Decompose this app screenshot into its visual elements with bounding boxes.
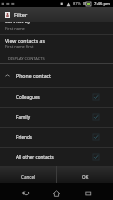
staticText: Phone contact	[16, 72, 51, 79]
button[interactable]: Friends	[0, 127, 113, 147]
staticText: Friends	[16, 134, 32, 140]
staticText: DISPLAY CONTACTS	[8, 56, 45, 61]
button[interactable]: Cancel	[0, 166, 56, 183]
staticText: Cancel	[21, 174, 36, 180]
button[interactable]: View contacts as	[0, 35, 113, 52]
staticText: 87%	[73, 1, 81, 6]
button[interactable]: OK	[57, 166, 113, 183]
button[interactable]: All other contacts	[0, 147, 113, 167]
staticText: First name	[5, 26, 25, 31]
staticText: Sort list by	[5, 17, 31, 24]
staticText: Colleagues	[16, 94, 40, 100]
staticText: All other contacts	[16, 154, 54, 160]
staticText: View contacts as	[5, 37, 45, 44]
button[interactable]: Colleagues	[0, 87, 113, 107]
button[interactable]: Back	[17, 185, 33, 200]
staticText: 7:46 pm	[94, 1, 110, 7]
staticText: First name first	[5, 44, 34, 49]
staticText: Filter	[14, 11, 28, 19]
button[interactable]: Sort list by	[0, 14, 113, 35]
staticText: OK	[82, 174, 89, 180]
button[interactable]: Phone contact	[0, 64, 113, 87]
button[interactable]: Family	[0, 107, 113, 127]
button[interactable]: Recent apps	[80, 185, 96, 200]
staticText: Family	[16, 114, 30, 120]
button[interactable]: Home	[48, 185, 64, 200]
